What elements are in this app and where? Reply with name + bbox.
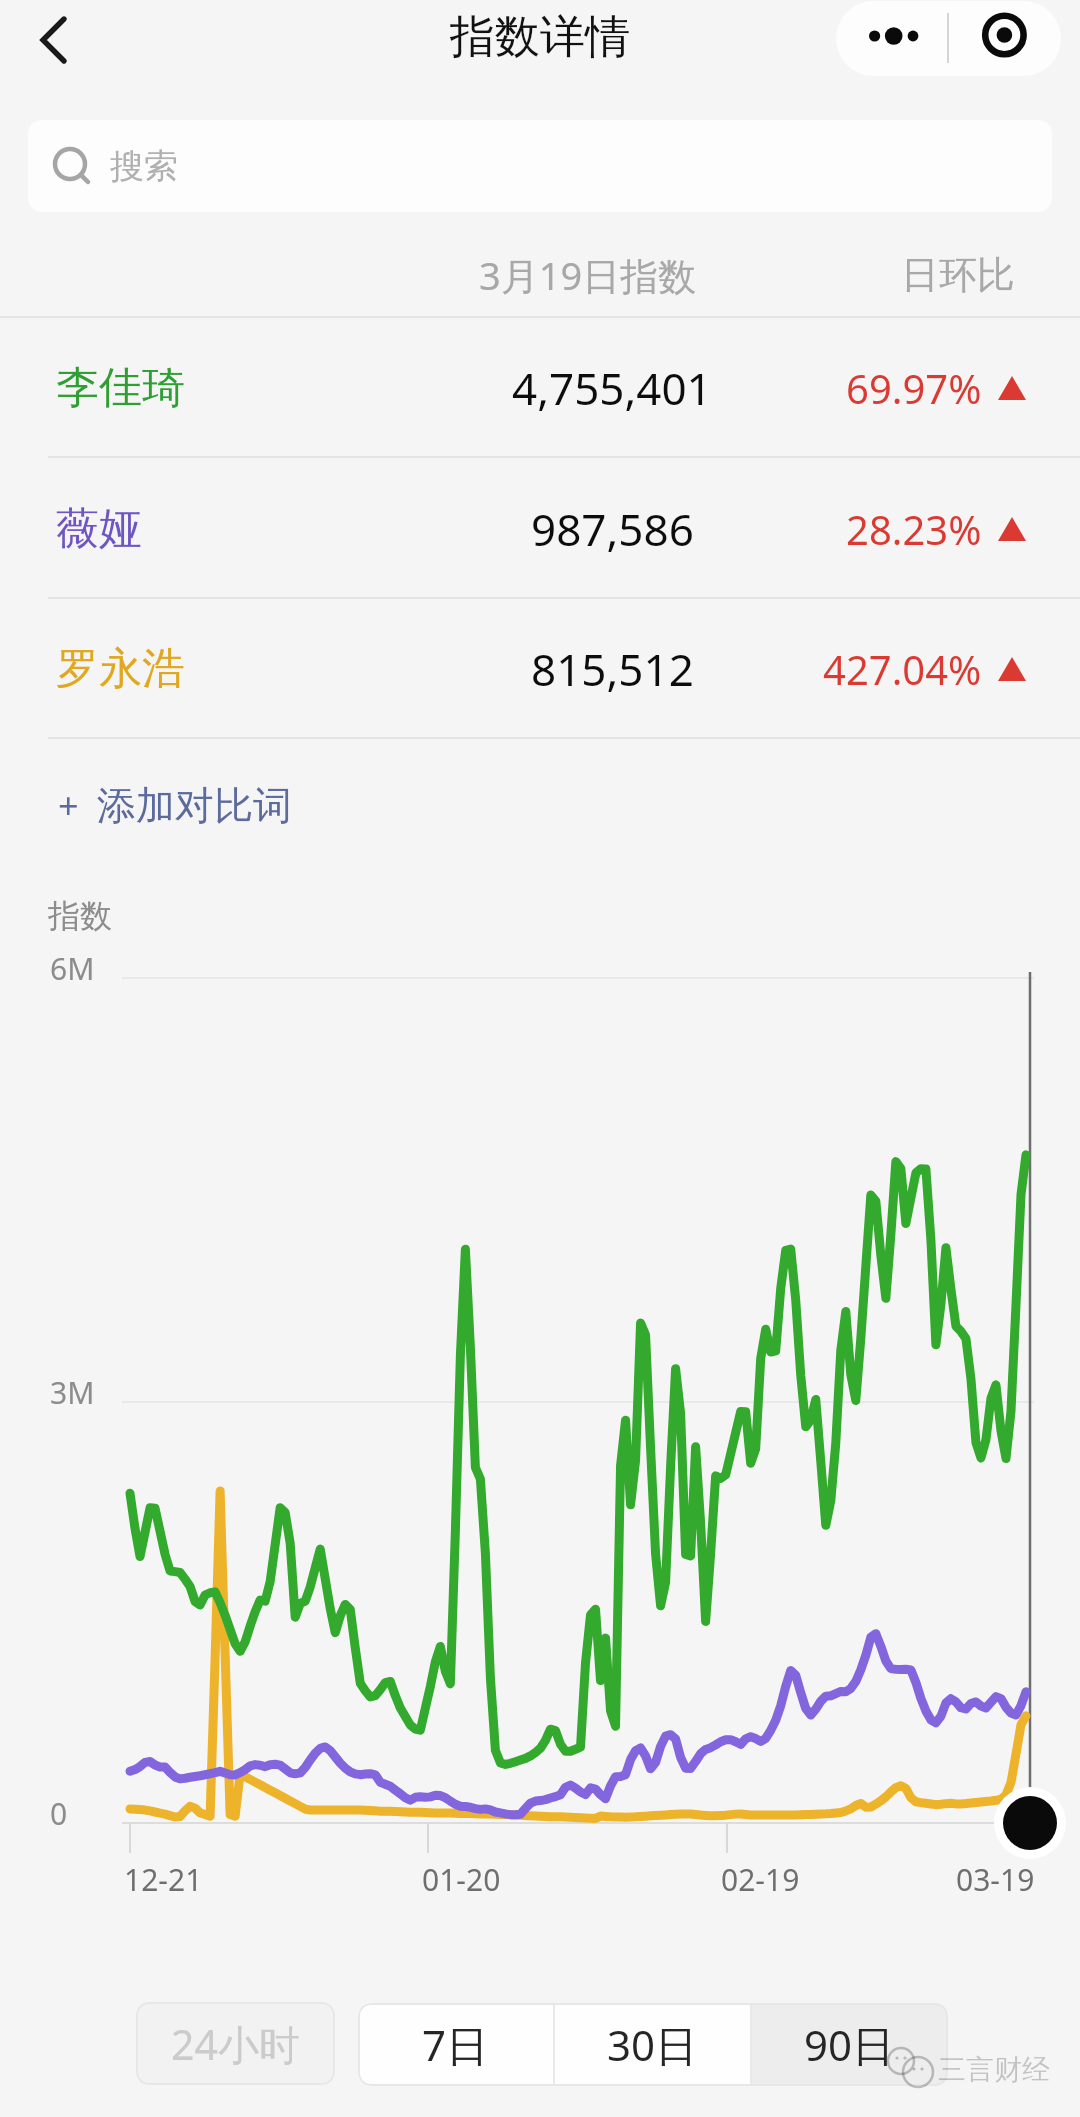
staticText: 三言财经 xyxy=(938,2052,1050,2087)
button[interactable]: 7日 xyxy=(358,2003,553,2086)
staticText: 02-19 xyxy=(721,1859,800,1900)
staticText: 0 xyxy=(50,1793,68,1834)
staticText: 李佳琦 xyxy=(56,361,185,415)
button[interactable]: 24小时 xyxy=(136,2002,335,2085)
staticText: 7日 xyxy=(422,2016,489,2073)
staticText: 28.23% xyxy=(846,502,982,556)
staticText: 987,586 xyxy=(531,499,694,559)
button[interactable]: More options xyxy=(840,1,952,76)
staticText: 01-20 xyxy=(422,1859,501,1900)
staticText: 日环比 xyxy=(901,251,1015,299)
staticText: 搜索 xyxy=(110,145,178,188)
staticText: 24小时 xyxy=(171,2016,300,2072)
staticText: + xyxy=(58,781,79,830)
staticText: 3月19日指数 xyxy=(479,249,697,301)
staticText: 6M xyxy=(50,948,95,989)
button[interactable]: Back xyxy=(0,0,110,80)
staticText: 90日 xyxy=(804,2016,895,2073)
staticText: 罗永浩 xyxy=(56,642,185,696)
button[interactable]: + xyxy=(46,765,304,845)
staticText: 3M xyxy=(50,1372,95,1413)
button[interactable]: Close mini program xyxy=(955,1,1055,76)
staticText: 4,755,401 xyxy=(512,358,712,418)
staticText: 03-19 xyxy=(956,1859,1035,1900)
staticText: 薇娅 xyxy=(56,502,142,556)
button[interactable]: 90日 xyxy=(752,2003,947,2086)
button[interactable]: 李佳琦 xyxy=(0,318,1080,458)
button[interactable]: 薇娅 xyxy=(0,459,1080,599)
staticText: 添加对比词 xyxy=(97,781,292,830)
staticText: 69.97% xyxy=(846,361,982,415)
staticText: 815,512 xyxy=(531,639,694,699)
button[interactable]: 搜索 xyxy=(28,120,1052,212)
staticText: 12-21 xyxy=(124,1859,203,1900)
staticText: 427.04% xyxy=(823,642,982,696)
button[interactable]: 罗永浩 xyxy=(0,599,1080,739)
staticText: 指数 xyxy=(48,896,112,936)
button[interactable]: 30日 xyxy=(555,2003,750,2086)
staticText: 指数详情 xyxy=(450,9,630,66)
staticText: 30日 xyxy=(607,2016,698,2073)
